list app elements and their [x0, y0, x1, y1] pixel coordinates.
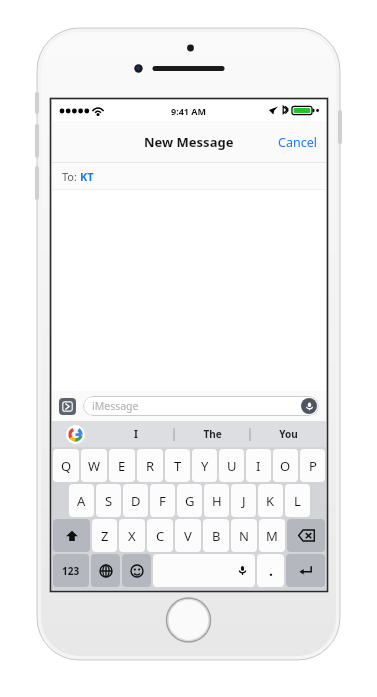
button[interactable]: The [175, 421, 250, 447]
button[interactable]: Change language [91, 554, 120, 587]
button[interactable]: You [251, 421, 326, 447]
button[interactable]: S [96, 484, 121, 517]
staticText: F [159, 492, 166, 510]
button[interactable]: Shift [53, 519, 90, 552]
button[interactable]: iMessage [83, 396, 319, 416]
button[interactable]: M [259, 519, 285, 552]
staticText: I [256, 457, 261, 475]
button[interactable]: I [98, 421, 174, 447]
button[interactable]: L [285, 484, 310, 517]
staticText: H [212, 492, 222, 510]
staticText: M [266, 527, 278, 545]
staticText: P [309, 457, 317, 475]
button[interactable]: T [165, 449, 190, 482]
button[interactable]: V [175, 519, 201, 552]
staticText: R [146, 457, 155, 475]
staticText: You [279, 427, 298, 441]
button[interactable]: A [69, 484, 94, 517]
button[interactable]: K [258, 484, 283, 517]
button[interactable]: Space [153, 554, 255, 587]
button[interactable]: Cancel [269, 126, 326, 159]
staticText: K [266, 492, 275, 510]
button[interactable]: C [147, 519, 173, 552]
button[interactable]: Google [52, 421, 98, 447]
staticText: W [88, 457, 101, 475]
staticText: New Message [144, 133, 234, 151]
staticText: J [242, 492, 246, 510]
staticText: KT [80, 169, 94, 184]
staticText: E [118, 457, 126, 475]
staticText: iMessage [92, 399, 139, 413]
button[interactable]: P [300, 449, 325, 482]
staticText: Z [101, 527, 109, 545]
staticText: O [280, 457, 291, 475]
staticText: L [294, 492, 301, 510]
button[interactable]: N [231, 519, 257, 552]
button[interactable]: E [109, 449, 135, 482]
staticText: 123 [62, 564, 80, 578]
staticText: I [134, 427, 138, 441]
button[interactable]: Z [92, 519, 117, 552]
staticText: G [185, 492, 195, 510]
staticText: 9:41 AM [171, 105, 207, 117]
staticText: U [227, 457, 237, 475]
button[interactable]: . [257, 554, 284, 587]
staticText: . [269, 561, 273, 580]
button[interactable]: F [150, 484, 175, 517]
button[interactable]: Apps [59, 398, 76, 415]
button[interactable]: Dictate [301, 398, 317, 414]
staticText: S [105, 492, 113, 510]
staticText: Y [201, 457, 209, 475]
staticText: V [184, 527, 192, 545]
button[interactable]: G [177, 484, 202, 517]
button[interactable]: Enter [286, 554, 325, 587]
button[interactable]: Q [53, 449, 79, 482]
staticText: C [156, 527, 165, 545]
button[interactable]: Numbers [53, 554, 89, 587]
staticText: The [203, 427, 222, 441]
staticText: B [212, 527, 221, 545]
staticText: T [174, 457, 182, 475]
staticText: N [239, 527, 249, 545]
staticText: D [131, 492, 141, 510]
button[interactable]: D [123, 484, 148, 517]
button[interactable]: Backspace [287, 519, 325, 552]
button[interactable]: Y [192, 449, 217, 482]
button[interactable]: Emoji [122, 554, 151, 587]
staticText: Q [61, 457, 72, 475]
button[interactable]: J [231, 484, 256, 517]
button[interactable]: B [203, 519, 229, 552]
staticText: X [128, 527, 136, 545]
button[interactable]: O [273, 449, 298, 482]
button[interactable]: H [204, 484, 229, 517]
staticText: A [77, 492, 86, 510]
staticText: Cancel [278, 134, 317, 151]
button[interactable]: R [137, 449, 163, 482]
staticText: To: [62, 169, 80, 184]
button[interactable]: To: [52, 163, 326, 190]
button[interactable]: U [219, 449, 244, 482]
button[interactable]: I [246, 449, 271, 482]
button[interactable]: X [119, 519, 145, 552]
button[interactable]: W [81, 449, 107, 482]
